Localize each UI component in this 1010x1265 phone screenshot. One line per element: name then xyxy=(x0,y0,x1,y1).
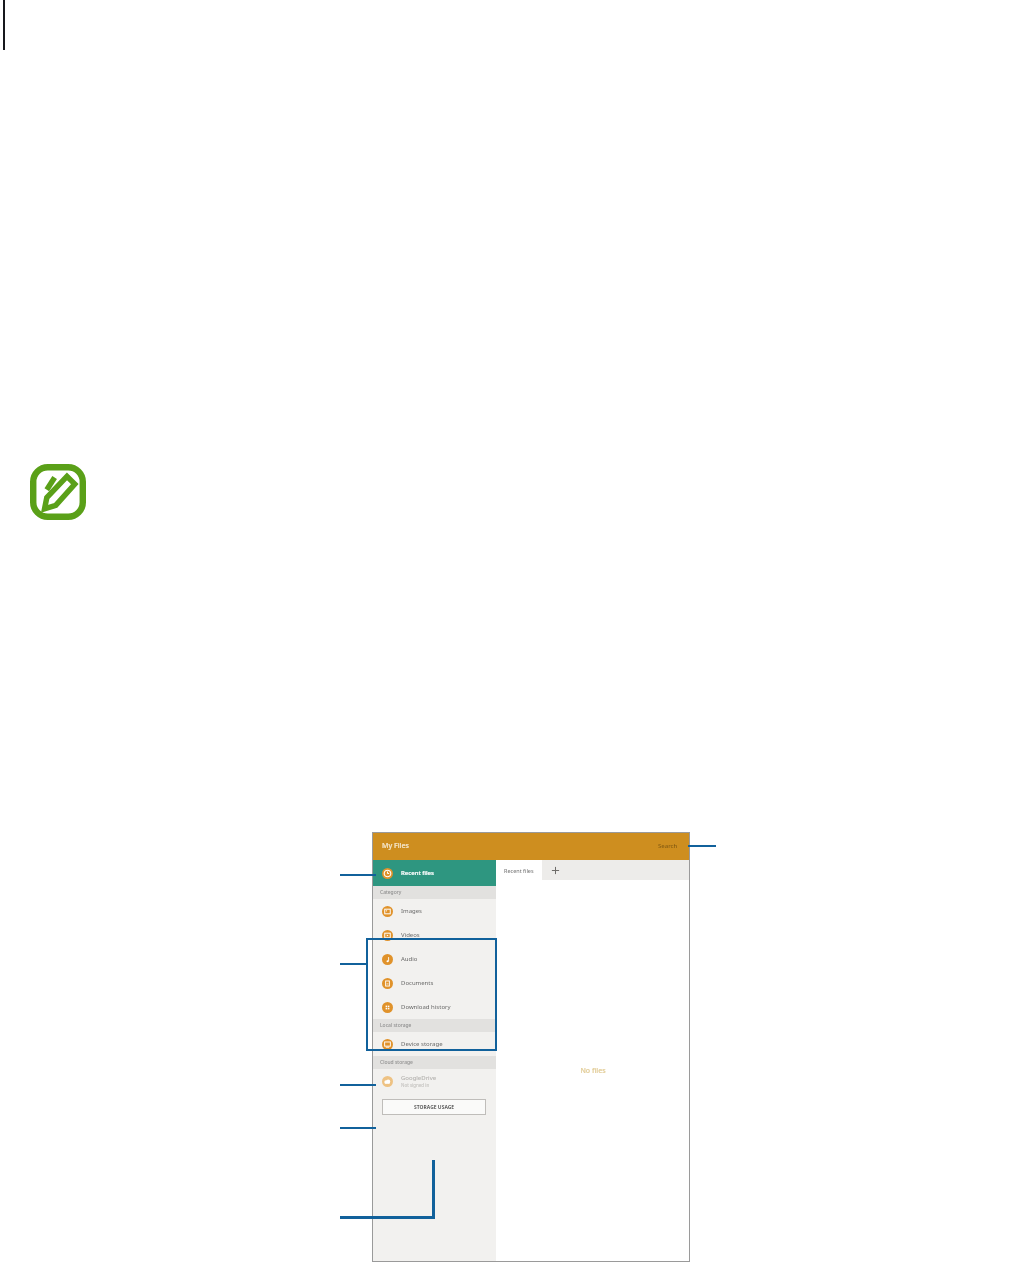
button[interactable]: GoogleDrive xyxy=(372,1069,496,1093)
staticText: Search xyxy=(658,842,678,850)
button[interactable]: Add tab xyxy=(542,860,568,880)
staticText: Download history xyxy=(401,1003,451,1011)
staticText: Recent files xyxy=(401,869,434,877)
staticText: Device storage xyxy=(401,1040,443,1048)
staticText: No files xyxy=(580,1066,606,1076)
button[interactable]: Device storage xyxy=(372,1032,496,1056)
button[interactable]: Audio xyxy=(372,947,496,971)
staticText: Category xyxy=(380,889,402,896)
button[interactable]: Images xyxy=(372,899,496,923)
button[interactable]: Videos xyxy=(372,923,496,947)
button[interactable]: Search xyxy=(656,840,680,852)
staticText: Audio xyxy=(401,955,418,963)
button[interactable]: Documents xyxy=(372,971,496,995)
button[interactable]: Recent files xyxy=(496,860,542,880)
staticText: GoogleDrive xyxy=(401,1074,437,1082)
staticText: Not signed in xyxy=(401,1082,430,1088)
staticText: Videos xyxy=(401,931,420,939)
staticText: Recent files xyxy=(504,867,534,874)
staticText: Local storage xyxy=(380,1022,412,1029)
staticText: Cloud storage xyxy=(380,1059,413,1066)
staticText: Images xyxy=(401,907,422,915)
button[interactable]: Download history xyxy=(372,995,496,1019)
staticText: Documents xyxy=(401,979,434,987)
button[interactable]: STORAGE USAGE xyxy=(382,1099,486,1115)
staticText: STORAGE USAGE xyxy=(414,1104,455,1111)
button[interactable]: Recent files xyxy=(372,860,496,886)
staticText: My Files xyxy=(382,841,409,851)
